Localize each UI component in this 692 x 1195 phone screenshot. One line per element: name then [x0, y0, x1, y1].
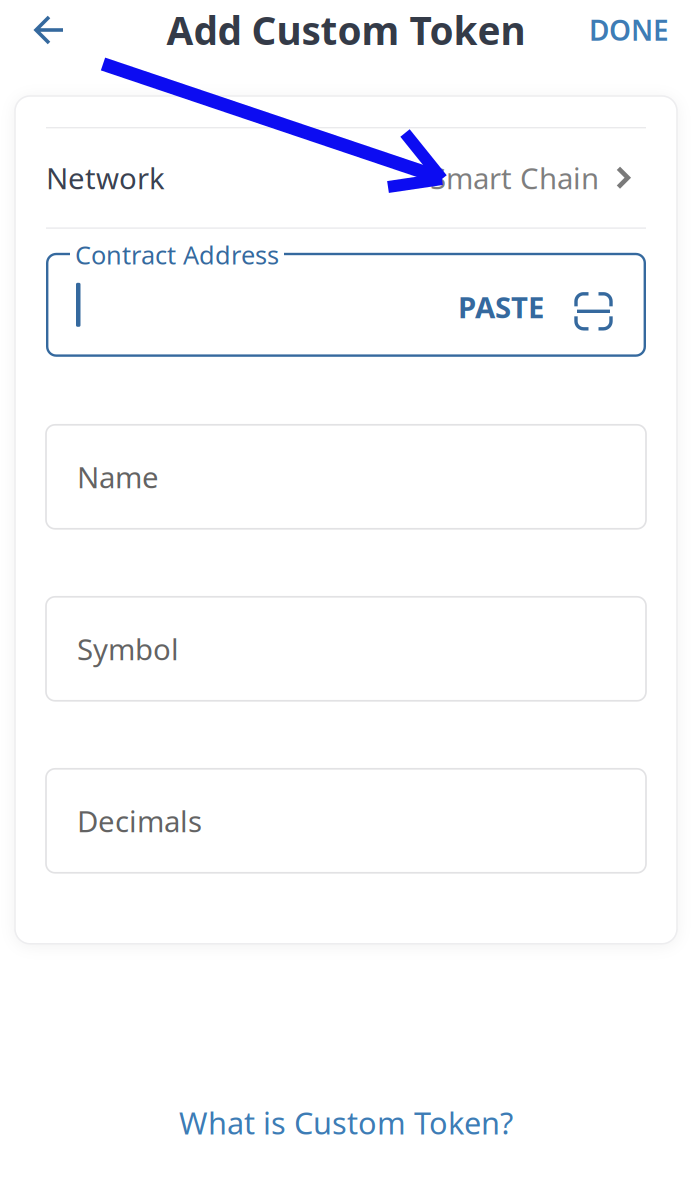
staticText: Smart Chain: [430, 158, 599, 197]
button[interactable]: Contract Address: [46, 253, 240, 357]
button[interactable]: Network: [15, 128, 677, 227]
button[interactable]: Symbol: [46, 597, 646, 701]
button[interactable]: Scan QR code: [544, 281, 628, 329]
button[interactable]: What is Custom Token?: [179, 1102, 513, 1143]
staticText: Contract Address: [75, 238, 279, 271]
staticText: What is Custom Token?: [179, 1102, 513, 1143]
button[interactable]: DONE: [589, 0, 692, 60]
button[interactable]: Back: [0, 0, 89, 60]
staticText: PASTE: [458, 287, 544, 326]
staticText: Symbol: [77, 629, 179, 668]
staticText: Add Custom Token: [166, 4, 525, 56]
staticText: Decimals: [77, 801, 202, 840]
staticText: Network: [46, 158, 165, 197]
button[interactable]: Decimals: [46, 769, 646, 873]
button[interactable]: Name: [46, 425, 646, 529]
staticText: Name: [77, 457, 159, 496]
staticText: DONE: [589, 11, 669, 49]
button[interactable]: PASTE: [458, 283, 544, 326]
